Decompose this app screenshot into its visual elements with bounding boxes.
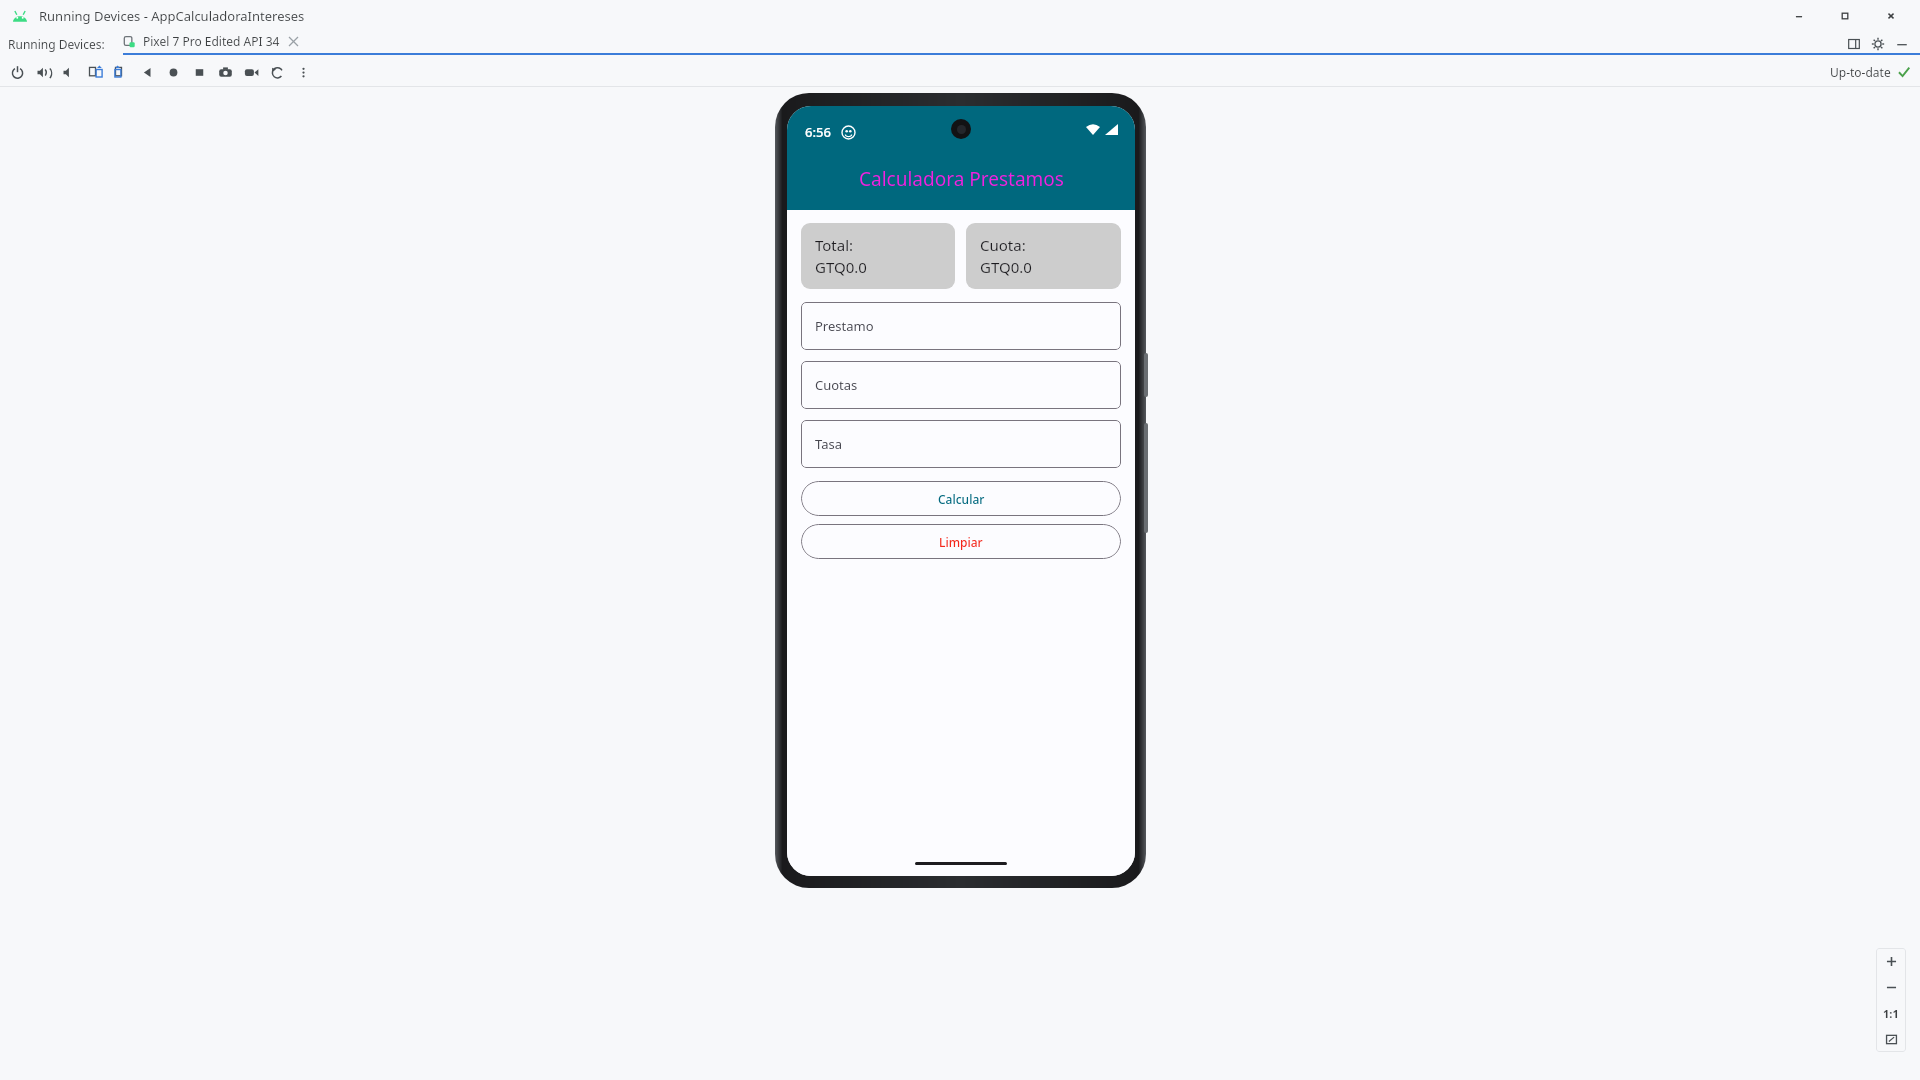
button[interactable]: Zoom in <box>1876 948 1906 974</box>
staticText: Cuota: <box>980 235 1026 255</box>
button[interactable]: Volume down <box>56 59 82 85</box>
button[interactable]: Total: <box>801 223 955 289</box>
button[interactable]: Layout <box>1842 32 1866 56</box>
button[interactable]: Limpiar <box>801 524 1121 559</box>
button[interactable]: Settings <box>1866 32 1890 56</box>
staticText: Total: <box>815 235 854 255</box>
staticText: Cuotas <box>815 376 858 394</box>
button[interactable]: Pixel 7 Pro Edited API 34 <box>123 33 1920 55</box>
button[interactable]: Screenshot <box>212 59 238 85</box>
button[interactable]: Zoom out <box>1876 974 1906 1000</box>
button[interactable]: Calcular <box>801 481 1121 516</box>
button[interactable]: Minimize <box>1776 0 1822 31</box>
staticText: Running Devices: <box>8 36 105 52</box>
button[interactable]: Home <box>160 59 186 85</box>
button[interactable]: Close <box>1868 0 1914 31</box>
button[interactable]: Maximize <box>1822 0 1868 31</box>
button[interactable]: Hide <box>1890 32 1914 56</box>
button[interactable]: 1:1 <box>1876 1000 1906 1026</box>
button[interactable]: Rotate right <box>108 59 134 85</box>
staticText: GTQ0.0 <box>815 257 867 277</box>
button[interactable]: Fit to screen <box>1876 1026 1906 1052</box>
staticText: Tasa <box>815 435 843 453</box>
button[interactable]: Cuotas <box>801 361 1121 409</box>
button[interactable]: Volume up <box>30 59 56 85</box>
staticText: 1:1 <box>1883 1006 1899 1021</box>
button[interactable]: Prestamo <box>801 302 1121 350</box>
button[interactable]: Rotate left <box>82 59 108 85</box>
button[interactable]: Back <box>134 59 160 85</box>
button[interactable]: History <box>264 59 290 85</box>
button[interactable]: Power <box>4 59 30 85</box>
button[interactable]: Cuota: <box>966 223 1121 289</box>
staticText: Up-to-date <box>1830 64 1891 80</box>
staticText: Calculadora Prestamos <box>859 166 1064 192</box>
button[interactable]: Tasa <box>801 420 1121 468</box>
staticText: 6:56 <box>805 123 831 141</box>
staticText: Prestamo <box>815 317 874 335</box>
button[interactable]: Record screen <box>238 59 264 85</box>
button[interactable]: Overview <box>186 59 212 85</box>
staticText: Pixel 7 Pro Edited API 34 <box>143 33 280 49</box>
staticText: Limpiar <box>939 534 983 550</box>
staticText: Running Devices - AppCalculadoraInterese… <box>39 7 305 25</box>
staticText: Calcular <box>938 491 985 507</box>
staticText: GTQ0.0 <box>980 257 1032 277</box>
button[interactable]: More <box>290 59 316 85</box>
